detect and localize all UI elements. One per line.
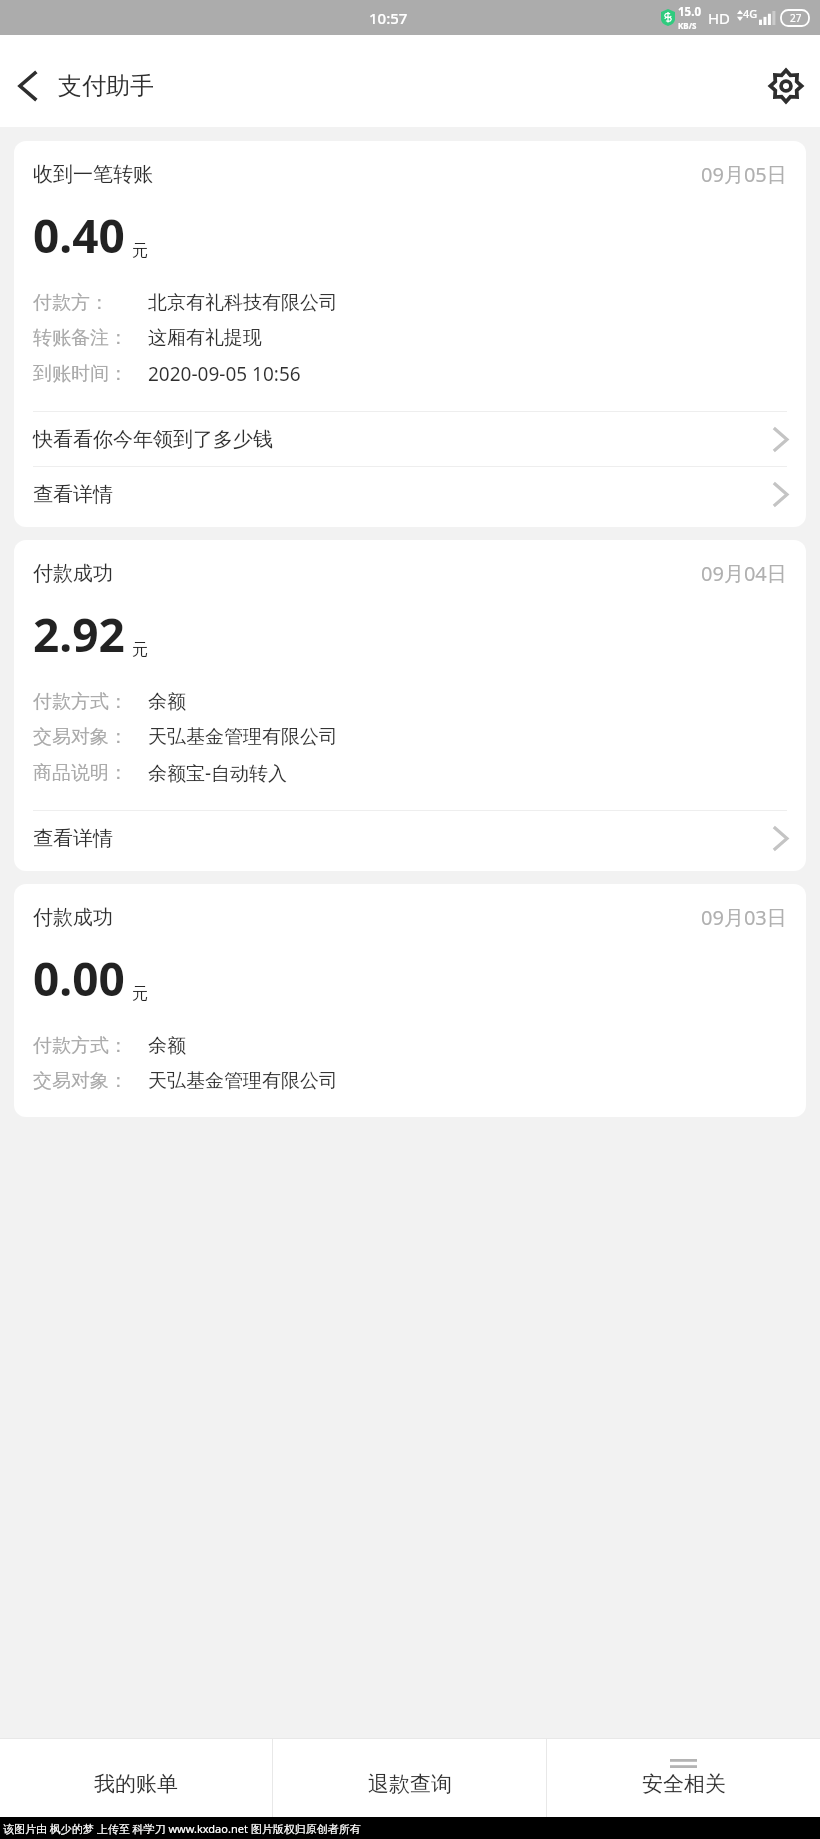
staticText: 09月03日 [701, 904, 787, 931]
button[interactable]: 快看看你今年领到了多少钱 [14, 412, 806, 466]
staticText: 退款查询 [368, 1771, 452, 1797]
staticText: 交易对象： [33, 725, 128, 749]
staticText: 北京有礼科技有限公司 [148, 291, 338, 315]
staticText: 余额 [148, 690, 186, 714]
staticText: 安全相关 [642, 1771, 726, 1797]
staticText: 15.0 [678, 4, 701, 20]
staticText: 09月05日 [701, 161, 787, 188]
staticText: 元 [132, 241, 148, 261]
button[interactable]: 安全相关 [547, 1738, 820, 1817]
button[interactable]: 退款查询 [273, 1738, 546, 1817]
staticText: 支付助手 [58, 71, 154, 101]
button[interactable]: 查看详情 [14, 467, 806, 521]
staticText: 转账备注： [33, 326, 128, 350]
button[interactable]: 我的账单 [0, 1738, 272, 1817]
staticText: 余额宝-自动转入 [148, 760, 288, 786]
staticText: 到账时间： [33, 362, 128, 386]
staticText: 10:57 [369, 8, 408, 28]
staticText: 查看详情 [33, 482, 113, 507]
staticText: 商品说明： [33, 761, 128, 785]
staticText: 元 [132, 640, 148, 660]
button[interactable]: Back [0, 63, 54, 109]
staticText: 4G [743, 6, 758, 21]
staticText: 0.00 [33, 947, 125, 1010]
staticText: 元 [132, 984, 148, 1004]
staticText: 交易对象： [33, 1069, 128, 1093]
staticText: 付款方式： [33, 1034, 128, 1058]
staticText: HD [708, 8, 731, 28]
staticText: 我的账单 [94, 1771, 178, 1797]
staticText: 2020-09-05 10:56 [148, 361, 301, 387]
staticText: 余额 [148, 1034, 186, 1058]
staticText: 该图片由 枫少的梦 上传至 科学刀 www.kxdao.net 图片版权归原创者… [3, 1821, 361, 1836]
staticText: 付款成功 [33, 561, 113, 586]
staticText: 收到一笔转账 [33, 162, 153, 187]
staticText: 09月04日 [701, 560, 787, 587]
staticText: 2.92 [33, 603, 125, 666]
staticText: 付款方： [33, 291, 109, 315]
staticText: 这厢有礼提现 [148, 326, 262, 350]
staticText: 快看看你今年领到了多少钱 [33, 427, 273, 452]
button[interactable]: 查看详情 [14, 811, 806, 865]
button[interactable]: Settings [756, 63, 816, 109]
staticText: 天弘基金管理有限公司 [148, 1069, 338, 1093]
staticText: 付款方式： [33, 690, 128, 714]
staticText: 付款成功 [33, 905, 113, 930]
staticText: 天弘基金管理有限公司 [148, 725, 338, 749]
staticText: 27 [790, 11, 802, 25]
staticText: 0.40 [33, 204, 125, 267]
staticText: 查看详情 [33, 826, 113, 851]
staticText: KB/S [678, 20, 697, 31]
